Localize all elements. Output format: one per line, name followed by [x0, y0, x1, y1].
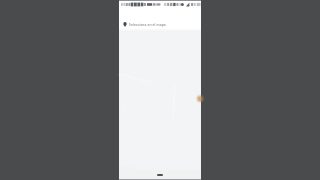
button[interactable]: Selecciona en el mapa	[119, 20, 201, 28]
other: Home gesture	[157, 174, 163, 176]
staticText: Selecciona en el mapa	[129, 22, 166, 26]
